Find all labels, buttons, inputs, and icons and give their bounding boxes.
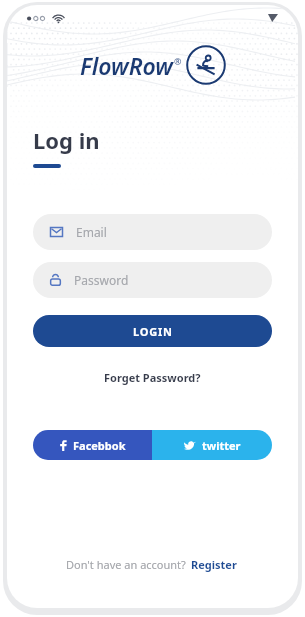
staticText: Register [191,557,237,572]
staticText: Password [74,272,129,288]
staticText: Email [76,224,107,240]
staticText: ® [174,55,182,67]
staticText: LOGIN [133,324,173,339]
button[interactable]: LOGIN [33,315,272,347]
button[interactable]: Facebbok [33,430,152,460]
button[interactable]: Email [33,214,272,250]
staticText: twitter [202,438,241,453]
button[interactable]: twitter [152,430,272,460]
button[interactable]: Register [189,555,239,574]
staticText: Log in [33,125,100,155]
button[interactable]: Password [33,262,272,298]
staticText: FlowRow [80,50,173,81]
staticText: Facebbok [73,438,126,453]
staticText: Forget Password? [104,370,201,385]
staticText: Don't have an account? [66,557,189,572]
button[interactable]: Forget Password? [98,367,207,388]
